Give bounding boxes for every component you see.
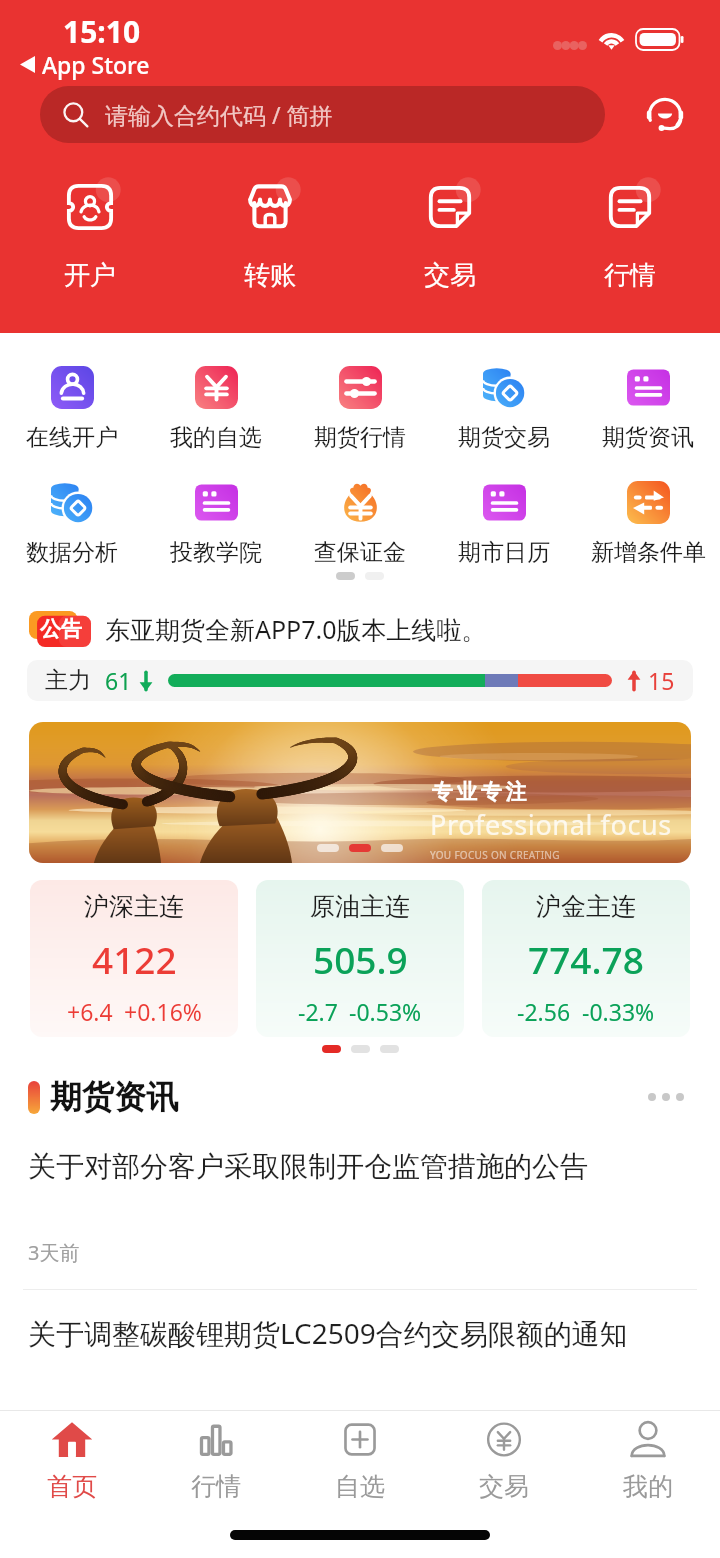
button[interactable]: 期市日历 — [432, 481, 576, 567]
button[interactable]: 新增条件单 — [576, 481, 720, 567]
staticText: 期货行情 — [314, 423, 406, 452]
button[interactable]: 行情 — [144, 1411, 288, 1511]
button[interactable]: 期货交易 — [432, 366, 576, 452]
staticText: 期货资讯 — [50, 1077, 178, 1117]
button[interactable]: 首页 — [0, 1411, 144, 1511]
staticText: YOU FOCUS ON CREATING — [430, 848, 560, 862]
button[interactable]: 投教学院 — [144, 481, 288, 567]
button[interactable]: Customer service — [640, 90, 690, 140]
staticText: -2.56 — [517, 996, 571, 1027]
staticText: 我的 — [623, 1471, 673, 1502]
button[interactable]: 关于调整碳酸锂期货LC2509合约交易限额的通知 — [0, 1314, 720, 1482]
button[interactable]: 关于对部分客户采取限制开仓监管措施的公告 — [0, 1149, 720, 1314]
staticText: 新增条件单 — [591, 538, 706, 567]
button[interactable]: 交易 — [360, 183, 540, 292]
button[interactable]: 数据分析 — [0, 481, 144, 567]
staticText: 自选 — [335, 1471, 385, 1502]
staticText: 开户 — [64, 259, 116, 292]
button[interactable]: More — [640, 1085, 692, 1109]
button[interactable]: 交易 — [432, 1411, 576, 1511]
button[interactable]: 期货资讯 — [576, 366, 720, 452]
staticText: 505.9 — [313, 934, 408, 984]
staticText: 行情 — [604, 259, 656, 292]
staticText: 关于调整碳酸锂期货LC2509合约交易限额的通知 — [28, 1314, 628, 1352]
staticText: 投教学院 — [170, 538, 262, 567]
staticText: 我的自选 — [170, 423, 262, 452]
button[interactable]: 沪金主连 — [482, 880, 690, 1037]
button[interactable]: 开户 — [0, 183, 180, 292]
staticText: 转账 — [244, 259, 296, 292]
staticText: Professional focus — [430, 806, 672, 843]
staticText: -0.33% — [582, 996, 655, 1027]
button[interactable]: 原油主连 — [256, 880, 464, 1037]
staticText: 主力 — [45, 666, 91, 695]
staticText: 3天前 — [28, 1407, 80, 1434]
staticText: 4122 — [92, 934, 177, 984]
staticText: 在线开户 — [26, 423, 118, 452]
staticText: 查保证金 — [314, 538, 406, 567]
button[interactable]: 主力 — [27, 660, 693, 701]
staticText: 公告 — [40, 616, 82, 642]
staticText: 首页 — [47, 1471, 97, 1502]
button[interactable]: 我的 — [576, 1411, 720, 1511]
staticText: 沪金主连 — [536, 891, 636, 922]
staticText: 交易 — [424, 259, 476, 292]
button[interactable]: 沪深主连 — [30, 880, 238, 1037]
staticText: 数据分析 — [26, 538, 118, 567]
button[interactable]: 请输入合约代码 / 简拼 — [40, 86, 605, 143]
staticText: 期货交易 — [458, 423, 550, 452]
staticText: +6.4 — [67, 996, 113, 1027]
button[interactable]: 转账 — [180, 183, 360, 292]
button[interactable]: 专业专注 — [29, 722, 691, 863]
staticText: 15 — [648, 665, 675, 696]
staticText: +0.16% — [124, 996, 202, 1027]
button[interactable]: 公告 — [0, 610, 720, 648]
staticText: 期市日历 — [458, 538, 550, 567]
staticText: 专业专注 — [430, 779, 528, 805]
staticText: 3天前 — [28, 1239, 80, 1266]
staticText: App Store — [42, 49, 150, 80]
button[interactable]: 期货行情 — [288, 366, 432, 452]
staticText: 请输入合约代码 / 简拼 — [105, 99, 333, 130]
staticText: 原油主连 — [310, 891, 410, 922]
staticText: 交易 — [479, 1471, 529, 1502]
button[interactable]: 在线开户 — [0, 366, 144, 452]
staticText: 行情 — [191, 1471, 241, 1502]
staticText: -2.7 — [298, 996, 338, 1027]
button[interactable]: 我的自选 — [144, 366, 288, 452]
staticText: 15:10 — [63, 11, 141, 52]
staticText: 期货资讯 — [602, 423, 694, 452]
staticText: 沪深主连 — [84, 891, 184, 922]
button[interactable]: 查保证金 — [288, 481, 432, 567]
button[interactable]: 自选 — [288, 1411, 432, 1511]
staticText: -0.53% — [349, 996, 422, 1027]
staticText: 关于对部分客户采取限制开仓监管措施的公告 — [28, 1149, 588, 1184]
staticText: 东亚期货全新APP7.0版本上线啦。 — [105, 612, 487, 646]
staticText: 774.78 — [528, 934, 644, 984]
staticText: 61 — [105, 665, 132, 696]
button[interactable]: 行情 — [540, 183, 720, 292]
